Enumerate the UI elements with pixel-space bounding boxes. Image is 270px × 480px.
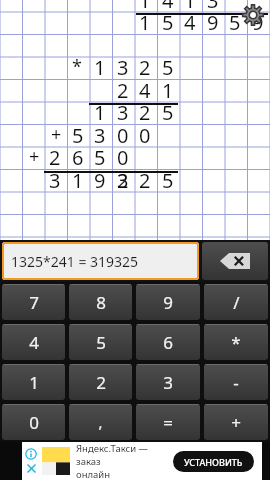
staticText: + [231, 411, 241, 434]
staticText: 3 [163, 371, 173, 394]
button[interactable]: 9 [136, 284, 200, 320]
button[interactable]: 0 [2, 404, 65, 440]
staticText: 7 [29, 291, 39, 314]
button[interactable]: / [204, 284, 268, 320]
staticText: 1 [72, 167, 84, 194]
staticText: 5 [162, 99, 174, 126]
button[interactable]: 1325*241 = 319325 [2, 242, 199, 280]
staticText: , [98, 412, 103, 432]
staticText: 3 [94, 122, 106, 149]
staticText: 2 [139, 54, 151, 81]
button[interactable]: 1 [2, 364, 65, 400]
staticText: 5 [229, 9, 241, 36]
staticText: 1 [139, 9, 151, 36]
staticText: - [233, 371, 239, 394]
staticText: 1 [162, 77, 174, 104]
button[interactable]: УСТАНОВИТЬ [173, 451, 254, 472]
button[interactable]: Close ad [26, 463, 37, 474]
staticText: 5 [162, 167, 174, 194]
staticText: 0 [117, 122, 129, 149]
staticText: 2 [49, 144, 61, 171]
staticText: 9 [94, 167, 106, 194]
staticText: 3 [117, 167, 129, 194]
staticText: 2 [139, 99, 151, 126]
staticText: 2 [139, 167, 151, 194]
button[interactable]: 8 [69, 284, 132, 320]
staticText: 5 [96, 331, 106, 354]
staticText: 1 [29, 371, 39, 394]
button[interactable]: + [204, 404, 268, 440]
staticText: + [51, 122, 62, 147]
staticText: 5 [72, 122, 84, 149]
staticText: 8 [96, 291, 106, 314]
staticText: 9 [163, 291, 173, 314]
staticText: + [29, 144, 40, 169]
staticText: 0 [29, 411, 39, 434]
staticText: 4 [162, 0, 174, 14]
staticText: 9 [207, 9, 219, 36]
staticText: 6 [163, 331, 173, 354]
staticText: 3 [117, 99, 129, 126]
button[interactable]: Settings [240, 2, 266, 28]
staticText: 4 [139, 77, 151, 104]
staticText: 6 [72, 144, 84, 171]
button[interactable]: 6 [136, 324, 200, 360]
staticText: 3 [117, 54, 129, 81]
staticText: 5 [94, 144, 106, 171]
button[interactable]: 2 [69, 364, 132, 400]
staticText: 1 [139, 0, 151, 14]
staticText: 3 [207, 0, 219, 14]
button[interactable]: Backspace [202, 242, 268, 280]
staticText: = [163, 411, 173, 434]
staticText: 3 [49, 167, 61, 194]
staticText: / [233, 291, 240, 314]
button[interactable]: 7 [2, 284, 65, 320]
button[interactable]: 4 [2, 324, 65, 360]
staticText: 2 [117, 167, 129, 194]
staticText: 2 [117, 77, 129, 104]
button[interactable]: , [69, 404, 132, 440]
staticText: 1325*241 = 319325 [11, 252, 139, 271]
button[interactable]: 3 [136, 364, 200, 400]
staticText: * [231, 331, 241, 354]
staticText: 5 [162, 54, 174, 81]
staticText: 4 [29, 331, 39, 354]
staticText: 5 [162, 9, 174, 36]
staticText: 1 [94, 54, 106, 81]
button[interactable]: - [204, 364, 268, 400]
staticText: 9 [252, 9, 264, 36]
staticText: 0 [117, 144, 129, 171]
staticText: УСТАНОВИТЬ [184, 456, 243, 468]
staticText: * [72, 54, 82, 79]
staticText: 2 [96, 371, 106, 394]
button[interactable]: = [136, 404, 200, 440]
staticText: 1 [94, 99, 106, 126]
staticText: 0 [139, 122, 151, 149]
staticText: Яндекс.Такси — заказ [76, 442, 173, 468]
staticText: 4 [184, 9, 196, 36]
staticText: онлайн [76, 468, 111, 480]
button[interactable]: 5 [69, 324, 132, 360]
staticText: 1 [184, 0, 196, 14]
button[interactable]: * [204, 324, 268, 360]
button[interactable]: Ad info [25, 448, 37, 460]
